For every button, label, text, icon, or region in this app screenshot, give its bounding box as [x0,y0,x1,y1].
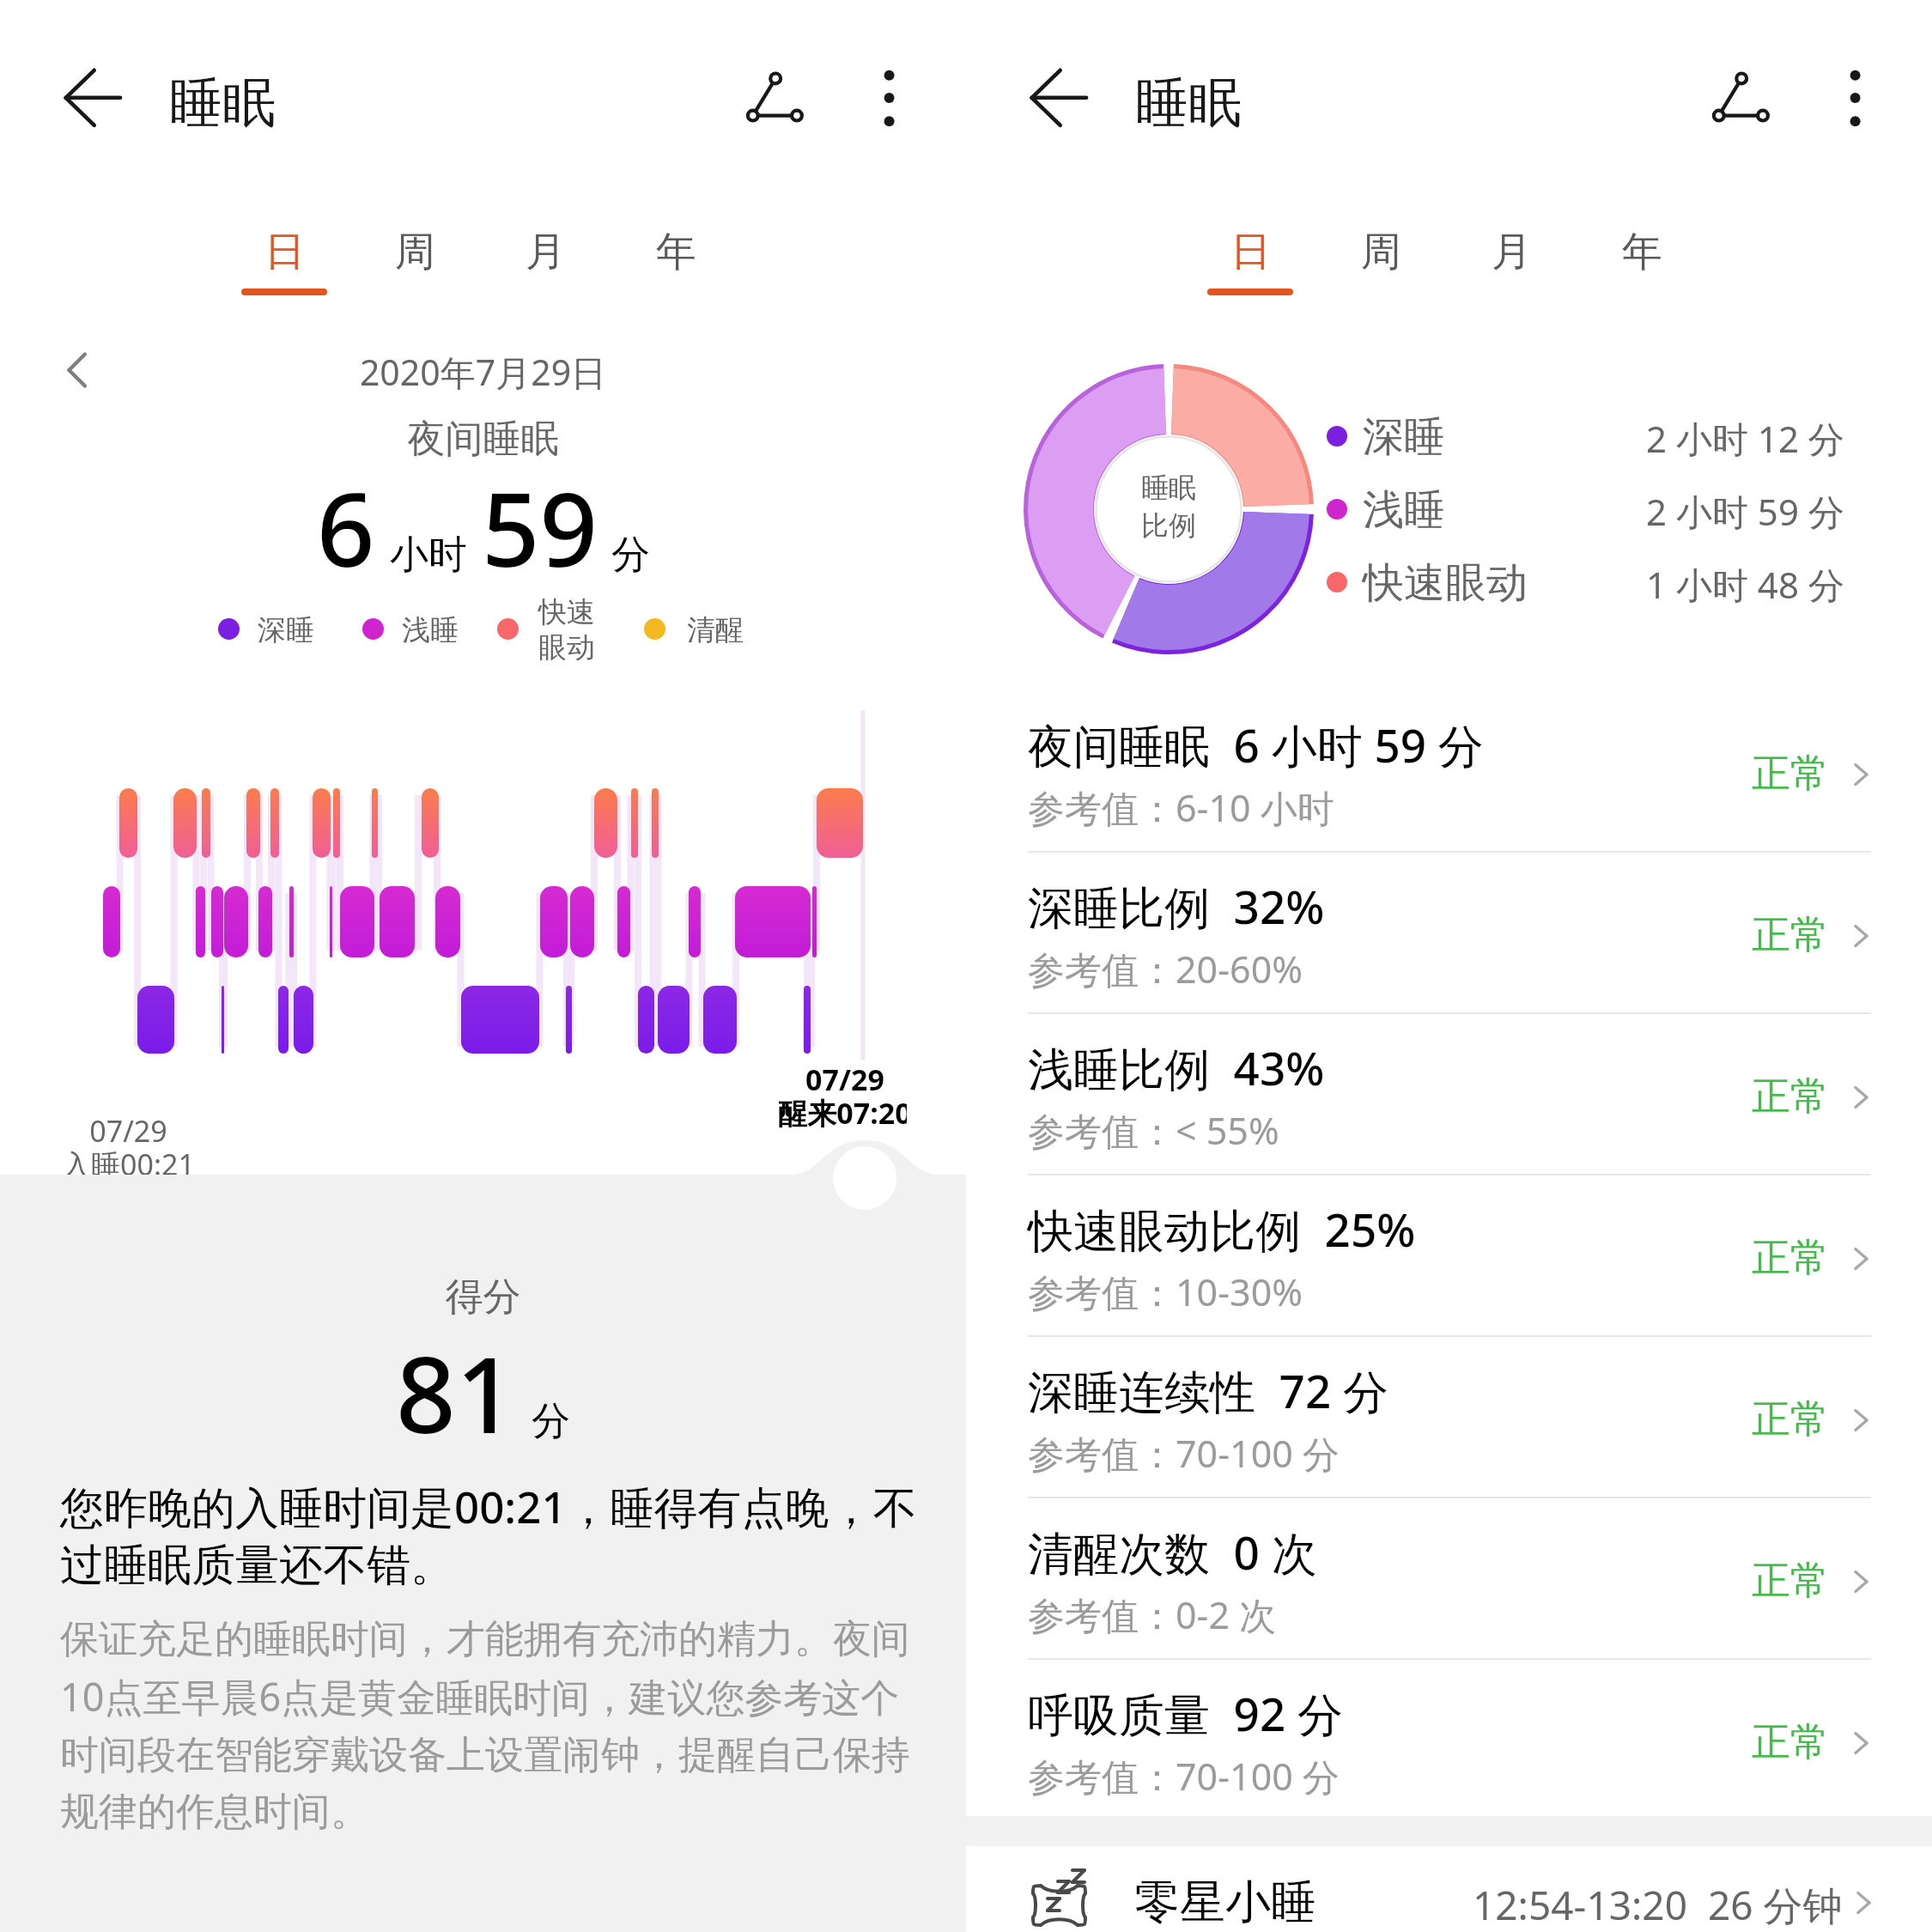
staticText: 呼吸质量 92 分 [1028,1682,1343,1744]
button[interactable]: 月 [1446,216,1577,302]
staticText: 周 [395,227,435,277]
staticText: 得分 [0,1273,966,1321]
staticText: 睡眠 比例 [1027,471,1310,543]
staticText: 2 小时 12 分 [1646,414,1844,463]
staticText: 保证充足的睡眠时间，才能拥有充沛的精力。夜间10点至早晨6点是黄金睡眠时间，建议… [60,1615,927,1837]
staticText: 2 小时 59 分 [1646,487,1844,536]
staticText: 夜间睡眠 [0,416,966,463]
staticText: 年 [656,227,696,277]
staticText: 参考值：20-60% [1028,944,1303,994]
staticText: 正常 [1752,1072,1829,1121]
button[interactable]: 清醒次数 0 次 [966,1498,1932,1660]
staticText: 参考值：70-100 分 [1028,1428,1340,1479]
staticText: 正常 [1752,1395,1829,1444]
staticText: 59 [482,459,598,597]
staticText: 正常 [1752,911,1829,960]
staticText: 零星小睡 [1134,1874,1316,1931]
button[interactable]: Share [737,62,812,137]
staticText: 参考值：10-30% [1028,1267,1303,1317]
staticText: 12:54-13:20 26 分钟 [1473,1878,1843,1932]
button[interactable]: 周 [349,216,480,302]
staticText: 月 [1492,227,1532,277]
staticText: 日 [1230,227,1271,277]
staticText: 小时 [390,531,467,580]
staticText: 浅睡 [1363,484,1445,536]
staticText: 2020年7月29日 [0,348,966,396]
staticText: 年 [1622,227,1662,277]
staticText: 深睡 [1363,411,1445,463]
staticText: 分 [532,1397,570,1446]
staticText: 深睡连续性 72 分 [1028,1359,1388,1421]
staticText: 浅睡比例 43% [1028,1036,1325,1098]
button[interactable]: 日 [219,216,349,302]
staticText: 夜间睡眠 6 小时 59 分 [1028,714,1484,775]
staticText: 快速眼动比例 25% [1028,1198,1416,1260]
button[interactable]: More options [869,62,910,103]
staticText: 月 [526,227,566,277]
staticText: 1 小时 48 分 [1646,560,1844,609]
button[interactable]: Share [1703,62,1778,137]
button[interactable]: 深睡连续性 72 分 [966,1337,1932,1498]
button[interactable]: 浅睡比例 43% [966,1014,1932,1176]
staticText: 81 [396,1321,516,1464]
button[interactable]: 快速眼动比例 25% [966,1176,1932,1337]
button[interactable]: Previous day [50,342,106,398]
button[interactable]: 周 [1315,216,1446,302]
staticText: 参考值：< 55% [1028,1105,1279,1156]
staticText: 参考值：6-10 小时 [1028,782,1334,833]
staticText: 6 [317,459,375,597]
staticText: 睡眠 [1135,70,1242,137]
staticText: 深睡 [258,612,314,648]
staticText: 快速眼动 [1363,557,1528,609]
staticText: 07/29 入睡00:21 [62,1111,191,1184]
staticText: 正常 [1752,1718,1829,1767]
staticText: 07/29 醒来07:20 [778,1060,907,1133]
button[interactable]: 呼吸质量 92 分 [966,1660,1932,1821]
staticText: 您昨晚的入睡时间是00:21，睡得有点晚，不过睡眠质量还不错。 [60,1476,927,1593]
staticText: 分 [611,531,650,580]
staticText: 浅睡 [402,612,459,648]
staticText: 清醒次数 0 次 [1028,1521,1317,1583]
staticText: 正常 [1752,1234,1829,1283]
staticText: 参考值：70-100 分 [1028,1751,1340,1801]
button[interactable]: Back [1016,62,1093,139]
staticText: 参考值：0-2 次 [1028,1589,1277,1640]
staticText: 深睡比例 32% [1028,875,1325,937]
staticText: 清醒 [687,612,744,648]
button[interactable]: 年 [1577,216,1707,302]
button[interactable]: 月 [480,216,611,302]
button[interactable]: 年 [611,216,741,302]
staticText: 睡眠 [169,70,276,137]
staticText: 周 [1361,227,1401,277]
staticText: 日 [264,227,305,277]
staticText: 正常 [1752,750,1829,799]
button[interactable]: 夜间睡眠 6 小时 59 分 [966,691,1932,853]
staticText: 快速 眼动 [538,594,595,665]
button[interactable]: More options [1835,62,1876,103]
button[interactable]: 深睡比例 32% [966,853,1932,1014]
button[interactable]: 日 [1185,216,1315,302]
button[interactable]: Back [50,62,127,139]
staticText: 正常 [1752,1557,1829,1606]
button[interactable]: 零星小睡 [966,1846,1932,1932]
